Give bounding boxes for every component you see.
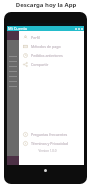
staticText: Mi Cuenta: [8, 26, 28, 31]
staticText: Pedidos anteriores: [31, 53, 63, 58]
button[interactable]: Compartir: [19, 60, 84, 69]
staticText: Version 1.0.0: [15, 149, 80, 153]
staticText: Compartir: [31, 62, 49, 67]
button[interactable]: Términos y Privacidad: [19, 139, 84, 148]
button[interactable]: Preguntas frecuentes: [19, 130, 84, 139]
staticText: Perfil: [31, 35, 40, 40]
staticText: Términos y Privacidad: [31, 141, 68, 146]
button[interactable]: Métodos de pago: [19, 42, 84, 51]
button[interactable]: Perfil: [19, 33, 84, 42]
staticText: Preguntas frecuentes: [31, 132, 68, 137]
staticText: Métodos de pago: [31, 44, 61, 49]
button[interactable]: Pedidos anteriores: [19, 51, 84, 60]
staticText: Descarga hoy la App: [0, 1, 92, 9]
